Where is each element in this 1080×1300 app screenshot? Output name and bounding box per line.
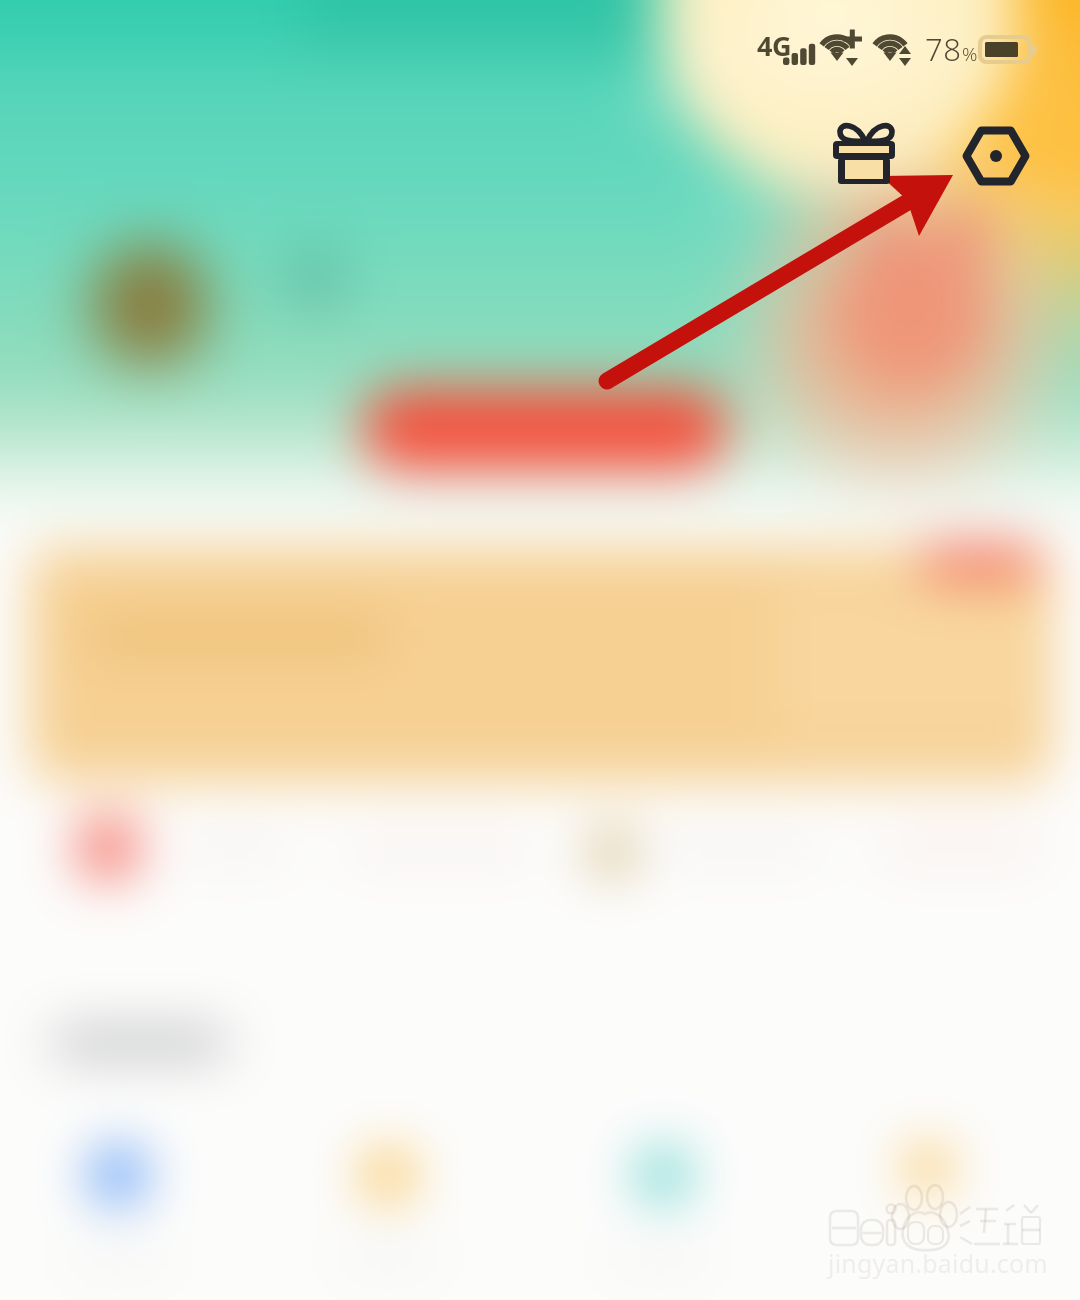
button[interactable]: Settings (958, 120, 1036, 192)
button[interactable]: Shortcut 2 (318, 1110, 458, 1270)
button[interactable]: Shortcut 4 (858, 1110, 998, 1270)
staticText: 78 (925, 28, 962, 70)
staticText: jingyan.baidu.com (828, 1246, 1048, 1280)
button[interactable]: Gifts (824, 120, 902, 192)
button[interactable]: Promotion card (30, 548, 1052, 782)
button[interactable]: Shortcut 3 (588, 1110, 728, 1270)
button[interactable]: Claim reward (362, 388, 728, 470)
staticText: % (962, 41, 978, 67)
button[interactable]: Shortcut 1 (48, 1110, 188, 1270)
staticText: 4G (757, 27, 791, 64)
